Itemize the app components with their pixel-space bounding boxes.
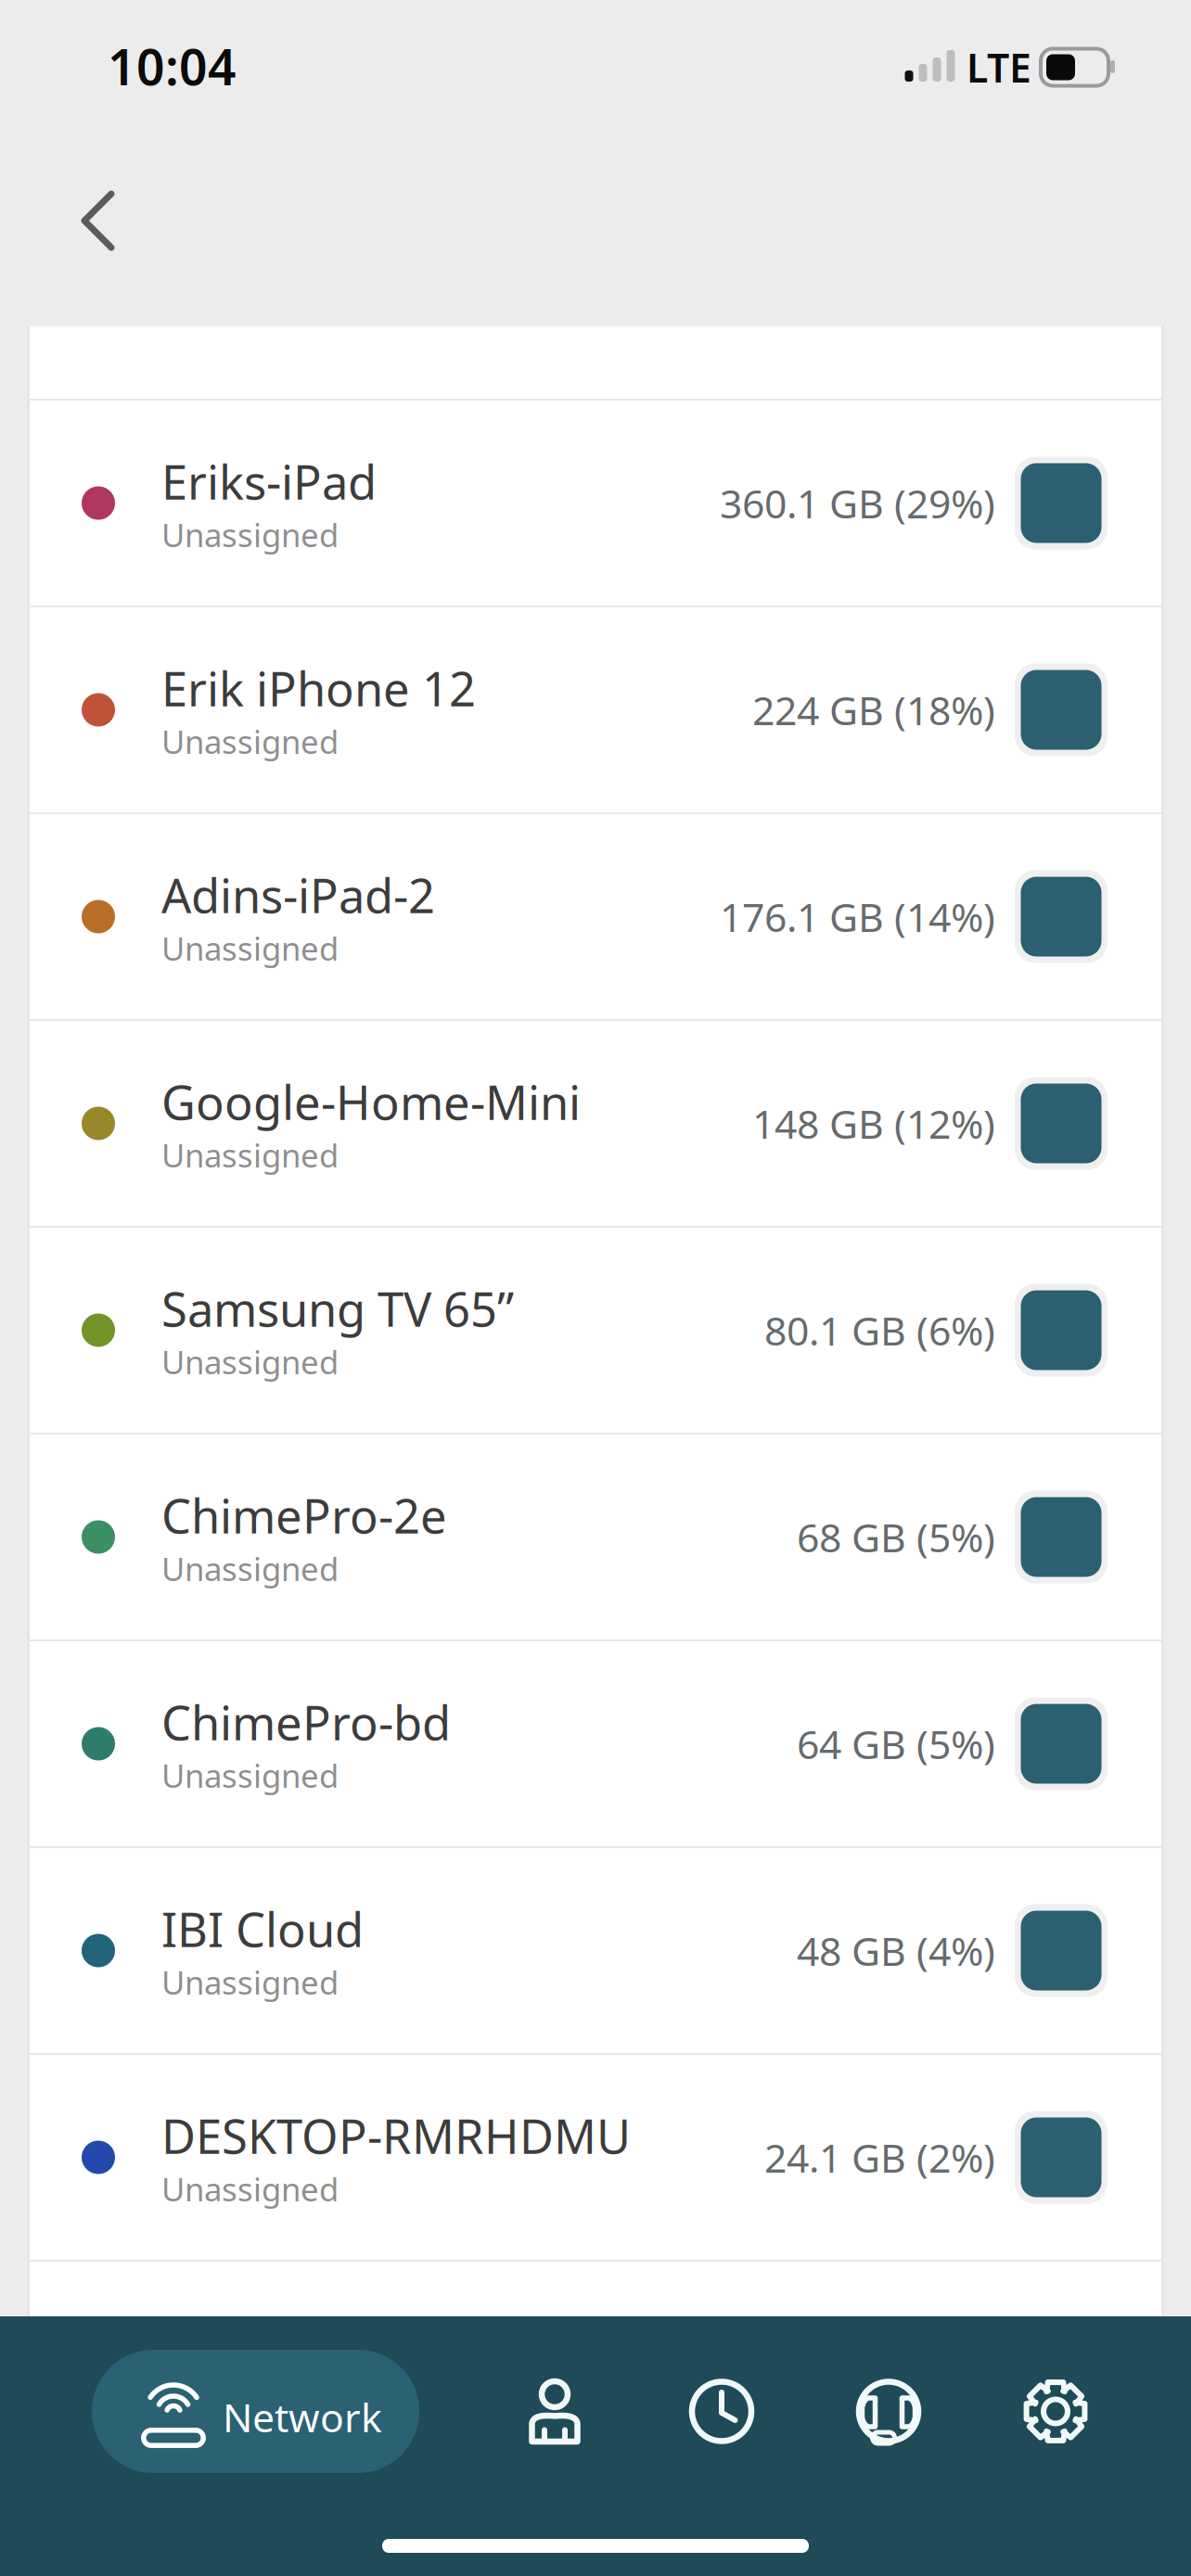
button[interactable]: ChimePro-2e	[30, 1435, 1161, 1639]
staticText: DESKTOP-RMRHDMU	[161, 2104, 631, 2167]
staticText: Unassigned	[161, 1547, 339, 1590]
button[interactable]: History	[638, 2350, 805, 2473]
staticText: IBI Cloud	[161, 1898, 364, 1960]
staticText: 48 GB (4%)	[797, 1924, 995, 1977]
staticText: Google-Home-Mini	[161, 1070, 581, 1133]
button[interactable]: Google-Home-Mini	[30, 1021, 1161, 1226]
staticText: Unassigned	[161, 513, 339, 556]
button[interactable]: Erik iPhone 12	[30, 607, 1161, 812]
staticText: 64 GB (5%)	[797, 1718, 995, 1770]
staticText: 80.1 GB (6%)	[764, 1304, 995, 1357]
button[interactable]: DESKTOP-RMRHDMU	[30, 2055, 1161, 2260]
button[interactable]: Adins-iPad-2	[30, 814, 1161, 1019]
staticText: Network	[223, 2391, 382, 2443]
staticText: Erik iPhone 12	[161, 657, 476, 719]
staticText: Unassigned	[161, 720, 339, 763]
button[interactable]: IBI Cloud	[30, 1848, 1161, 2053]
button[interactable]: Profile	[471, 2350, 638, 2473]
button[interactable]: Network	[92, 2350, 419, 2473]
button[interactable]: ChimePro-bd	[30, 1641, 1161, 1846]
staticText: Unassigned	[161, 927, 339, 970]
button[interactable]: Support	[805, 2350, 972, 2473]
staticText: Eriks-iPad	[161, 450, 377, 512]
staticText: ChimePro-bd	[161, 1691, 451, 1753]
staticText: Unassigned	[161, 2168, 339, 2210]
staticText: 176.1 GB (14%)	[720, 890, 995, 943]
staticText: 148 GB (12%)	[752, 1097, 995, 1150]
staticText: LTE	[967, 41, 1031, 93]
staticText: Unassigned	[161, 1961, 339, 2003]
button[interactable]: Eriks-iPad	[30, 401, 1161, 606]
staticText: Unassigned	[161, 1134, 339, 1176]
staticText: 68 GB (5%)	[797, 1511, 995, 1563]
staticText: Adins-iPad-2	[161, 864, 435, 926]
staticText: 224 GB (18%)	[752, 684, 995, 736]
button[interactable]: Settings	[972, 2350, 1139, 2473]
staticText: Unassigned	[161, 1340, 339, 1383]
button[interactable]: Samsung TV 65”	[30, 1228, 1161, 1433]
button[interactable]: Back	[0, 146, 150, 290]
staticText: Samsung TV 65”	[161, 1277, 514, 1340]
staticText: ChimePro-2e	[161, 1484, 447, 1546]
staticText: 10:04	[108, 33, 237, 99]
staticText: 24.1 GB (2%)	[764, 2131, 995, 2184]
staticText: Unassigned	[161, 1754, 339, 1797]
staticText: 360.1 GB (29%)	[720, 477, 995, 529]
